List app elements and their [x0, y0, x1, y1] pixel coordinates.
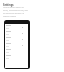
- button[interactable]: [5, 30, 28, 36]
- button[interactable]: [5, 24, 28, 30]
- staticText: Settings: [3, 3, 14, 7]
- button[interactable]: [5, 36, 28, 42]
- button[interactable]: [5, 42, 28, 48]
- button[interactable]: [5, 54, 28, 60]
- staticText: Lorem ipsum dolor sit amet, consectetur …: [3, 6, 28, 18]
- button[interactable]: [5, 48, 28, 54]
